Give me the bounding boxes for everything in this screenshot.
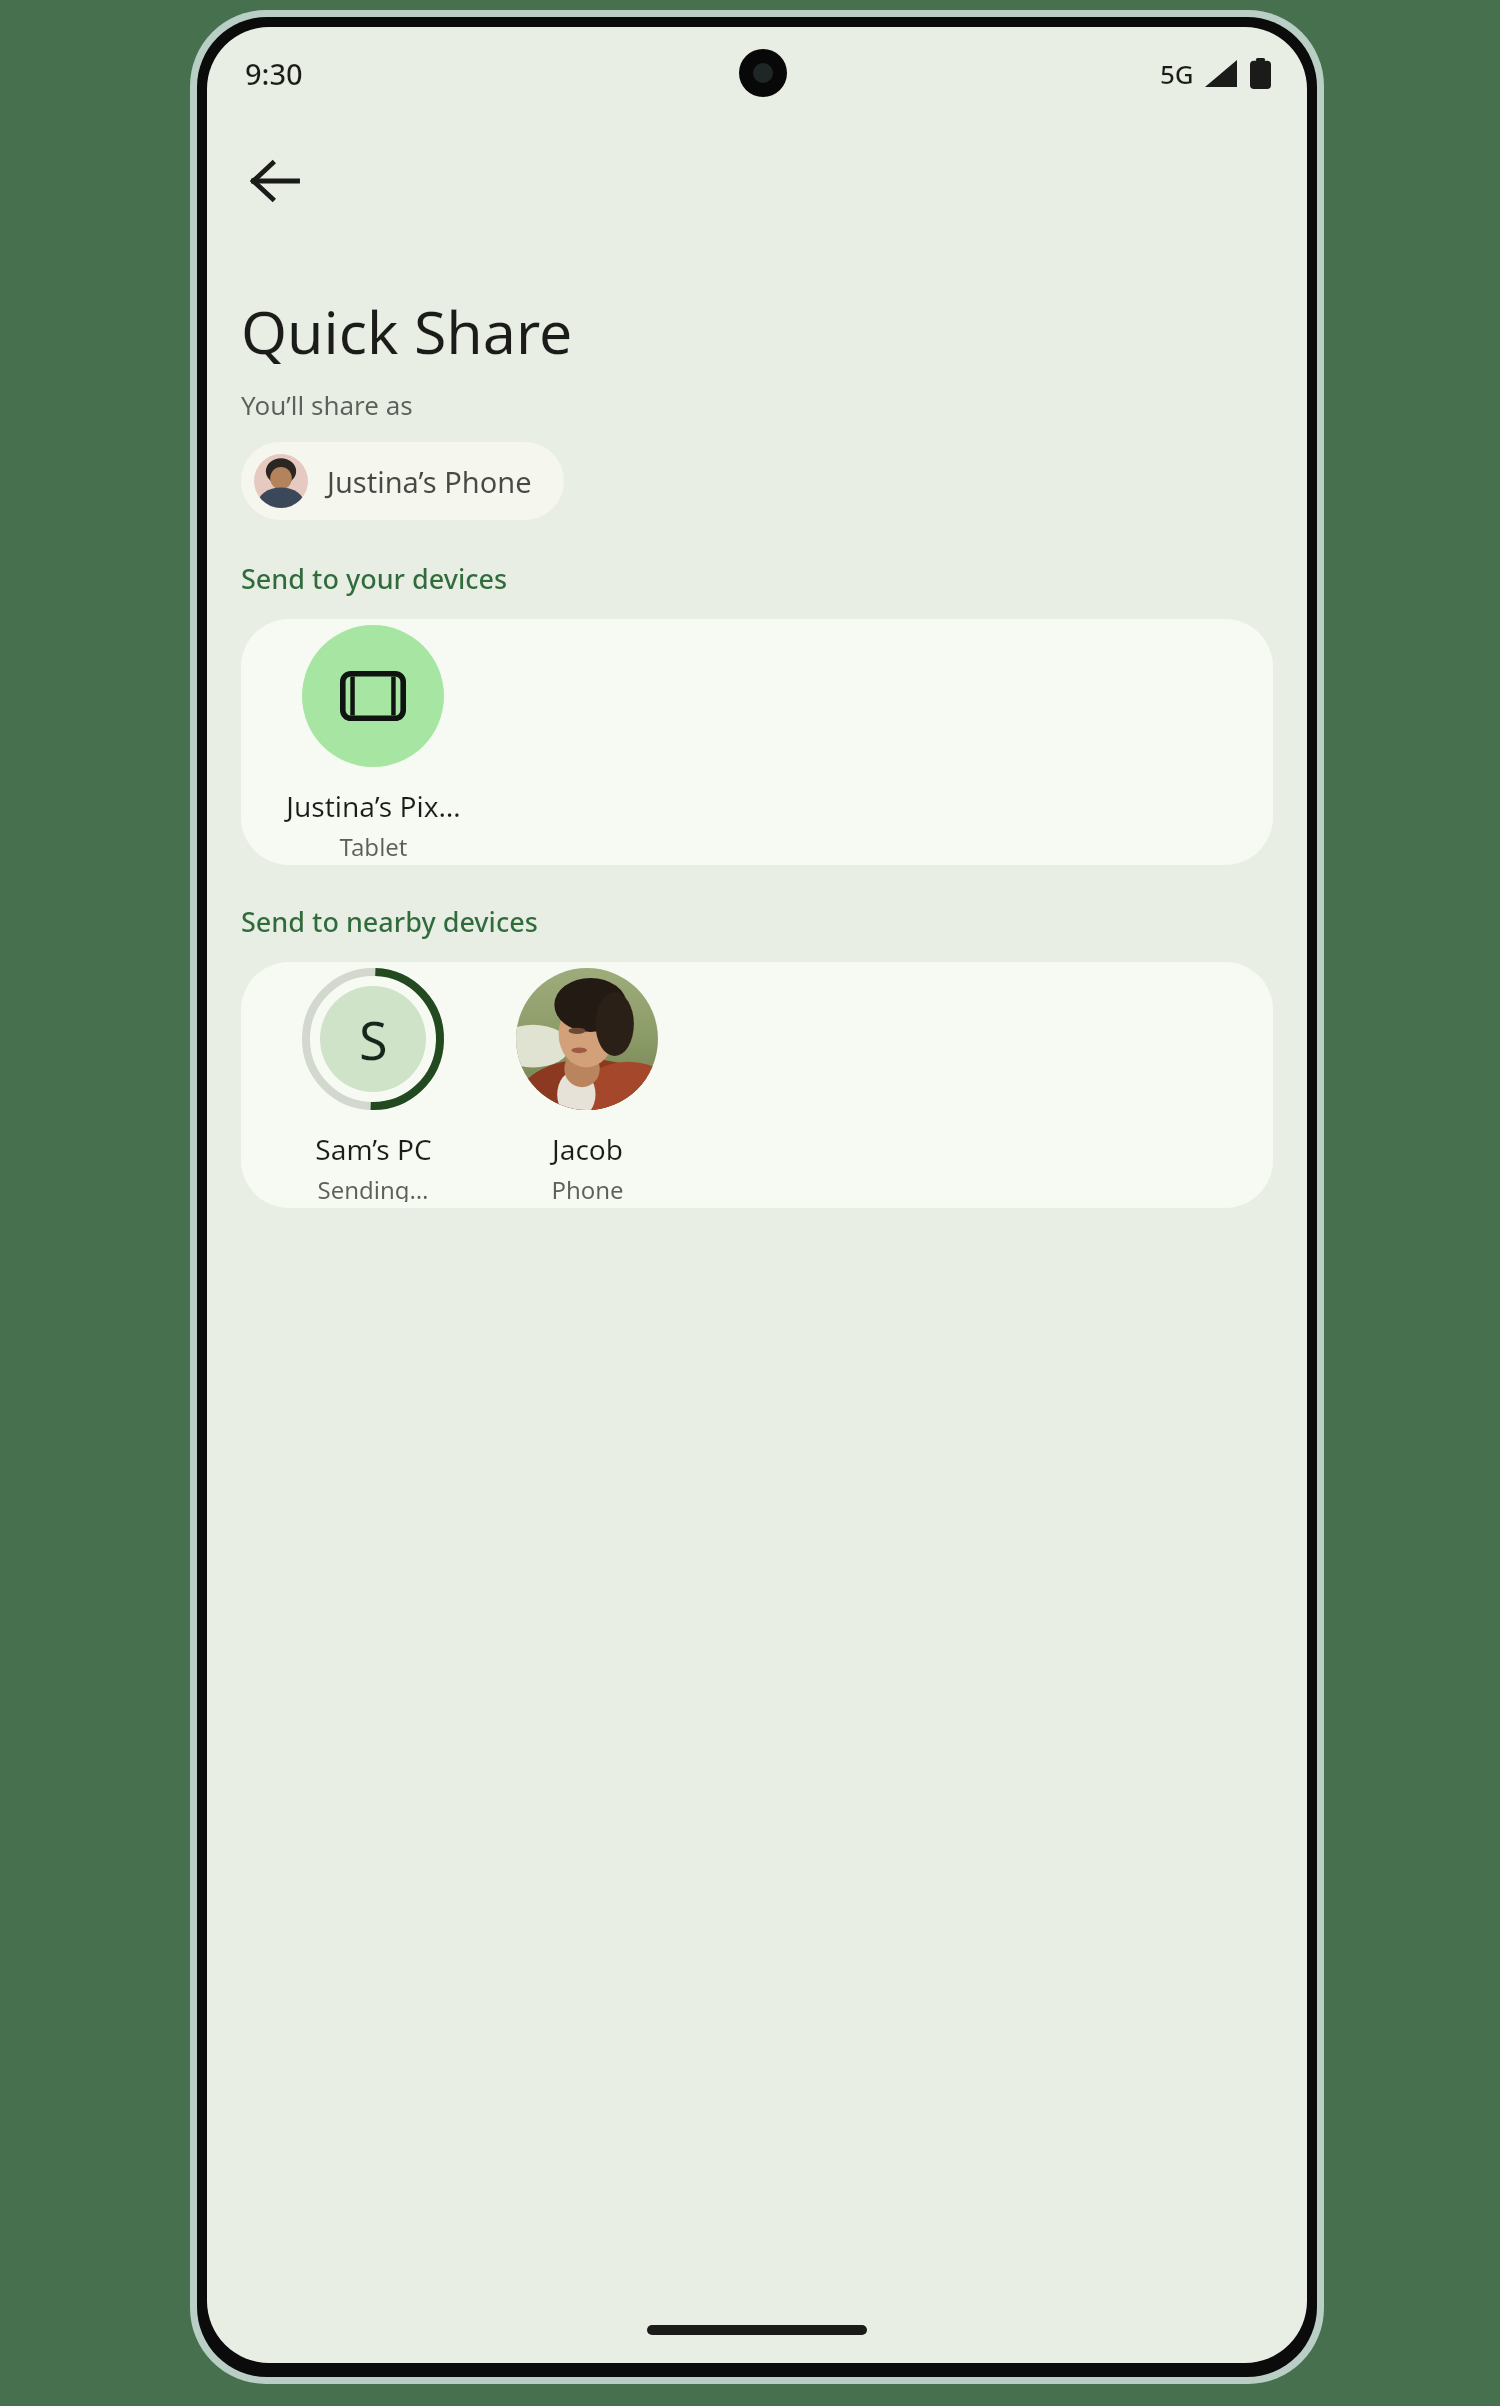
staticText: 5G <box>1160 56 1194 91</box>
button[interactable]: S <box>283 962 463 1208</box>
staticText: Send to your devices <box>241 560 508 597</box>
staticText: Sending… <box>317 1173 429 1202</box>
staticText: Justina’s Phone <box>327 462 532 501</box>
staticText: Sam’s PC <box>315 1130 432 1168</box>
staticText: Quick Share <box>241 291 573 371</box>
staticText: Tablet <box>339 830 408 859</box>
staticText: 9:30 <box>245 54 303 93</box>
button[interactable]: Back <box>229 135 321 227</box>
button[interactable]: Justina’s Pix… <box>283 619 463 865</box>
staticText: Phone <box>551 1173 624 1202</box>
staticText: Justina’s Pix… <box>286 787 461 825</box>
button[interactable]: Jacob <box>497 962 677 1208</box>
staticText: Jacob <box>552 1130 623 1168</box>
staticText: S <box>359 1004 388 1075</box>
button[interactable]: Justina’s Phone <box>241 442 564 520</box>
staticText: You’ll share as <box>241 387 413 422</box>
staticText: Send to nearby devices <box>241 903 538 940</box>
